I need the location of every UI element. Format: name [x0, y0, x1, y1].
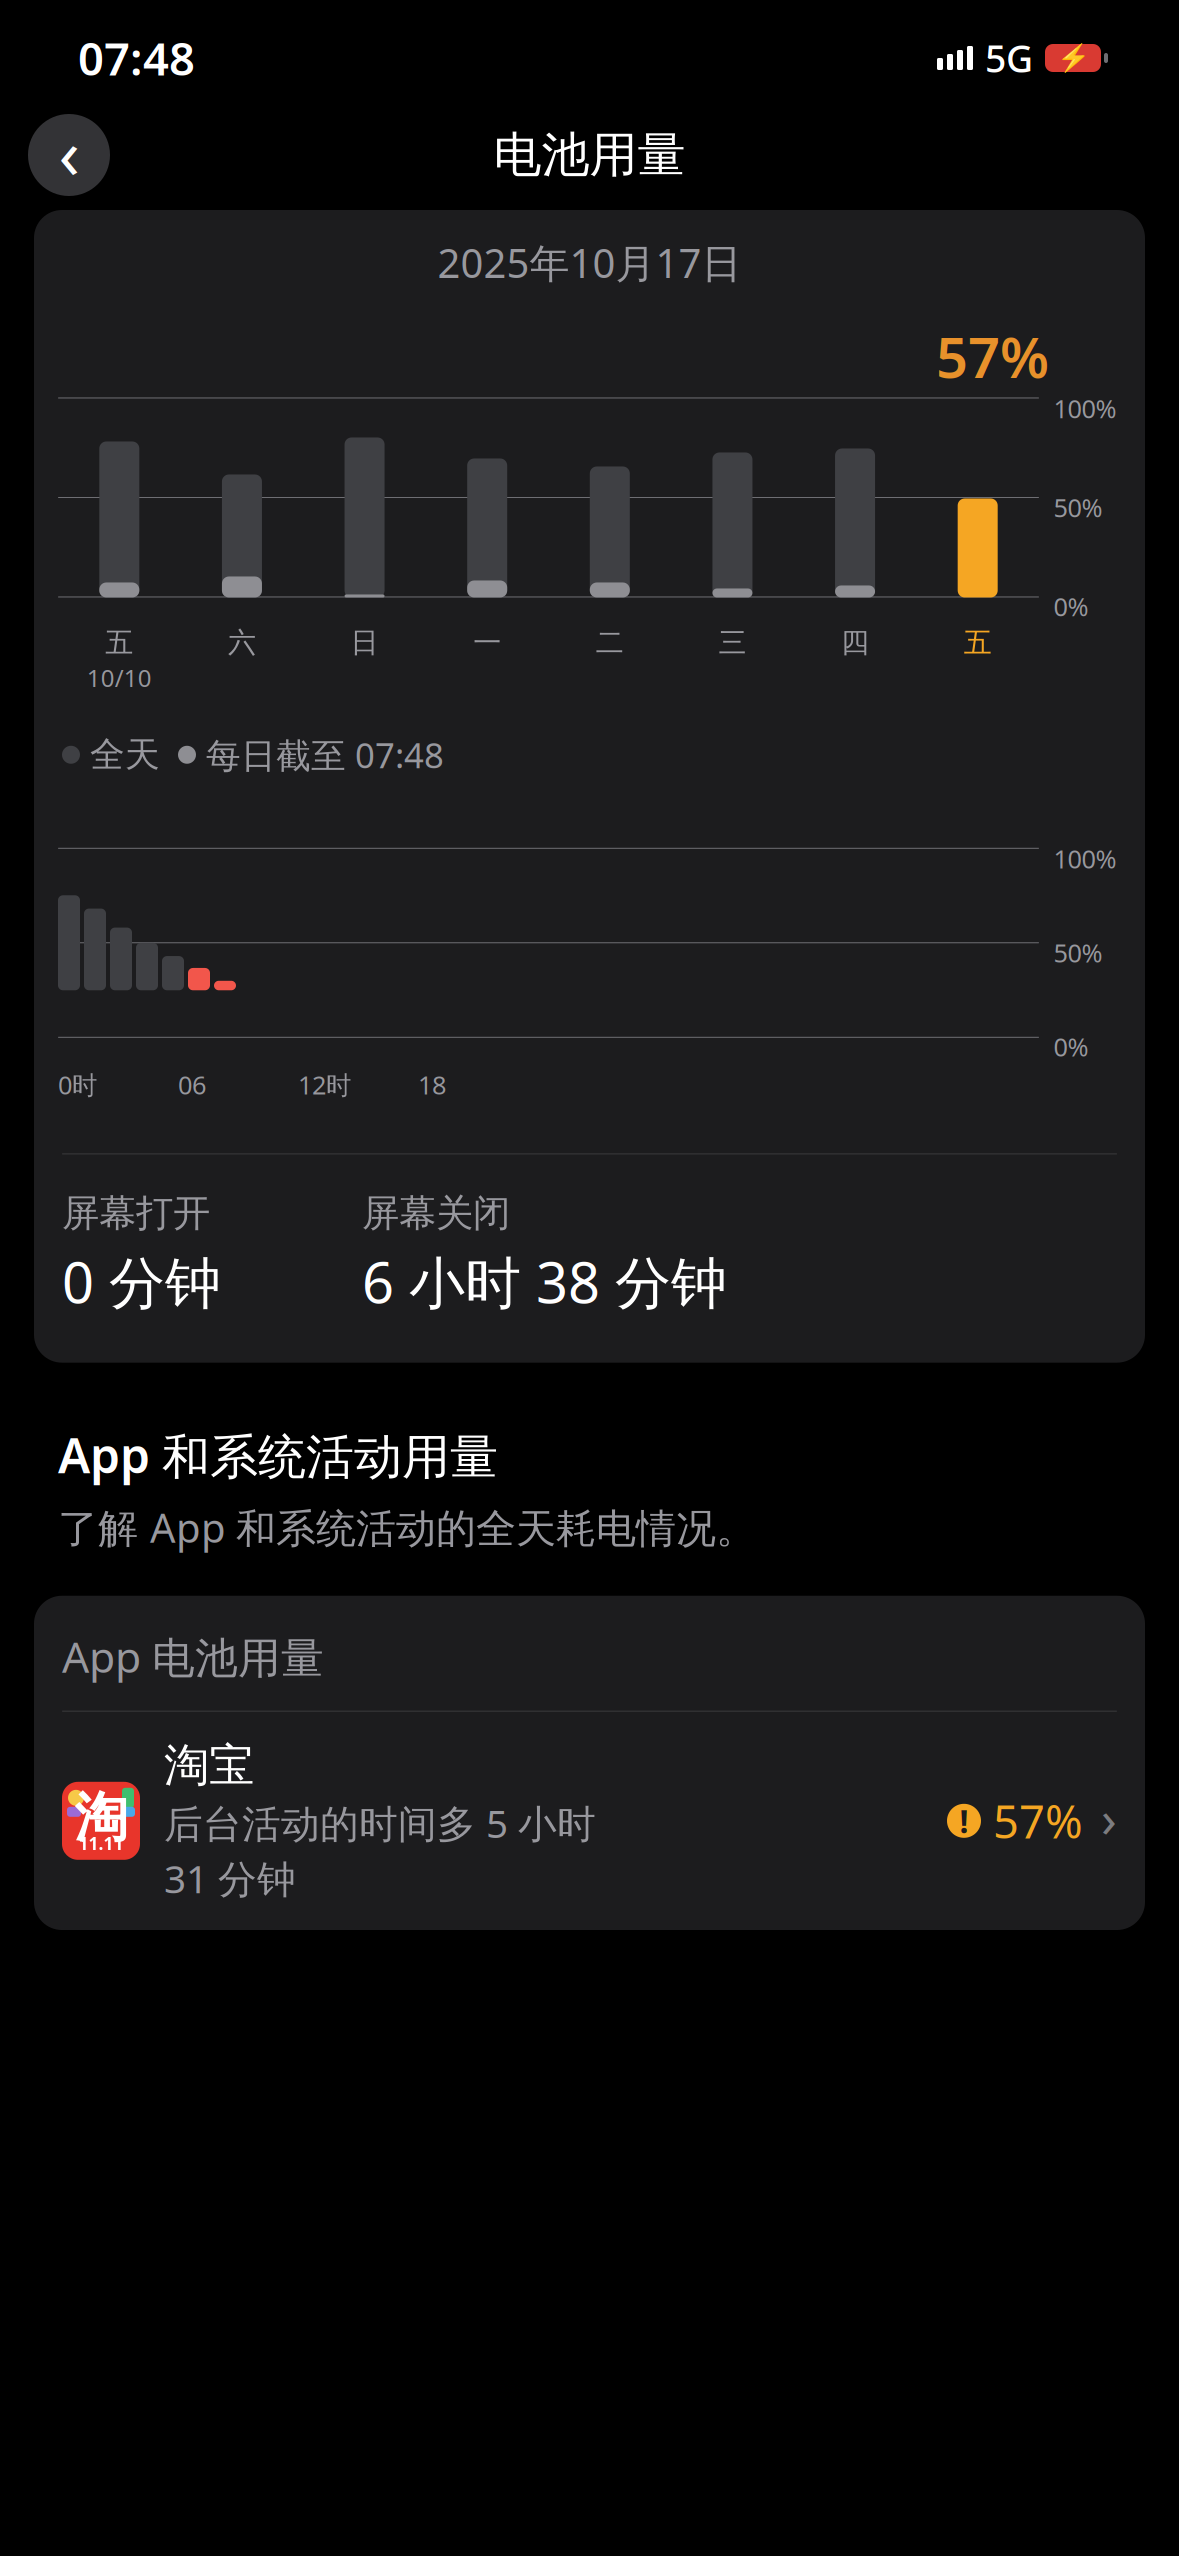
staticText: ‹	[58, 106, 79, 198]
staticText: ⚡	[1056, 43, 1089, 73]
staticText: 五	[105, 625, 133, 660]
staticText: 07:48	[78, 28, 195, 88]
staticText: 11.11	[78, 1832, 123, 1855]
staticText: 屏幕关闭	[362, 1190, 510, 1236]
staticText: 100%	[1053, 842, 1116, 876]
staticText: 一	[473, 625, 501, 660]
staticText: ›	[1101, 1784, 1117, 1851]
staticText: 电池用量	[493, 125, 685, 184]
staticText: 5G	[985, 33, 1033, 83]
staticText: 了解 App 和系统活动的全天耗电情况。	[58, 1501, 756, 1554]
staticText: 100%	[1053, 392, 1116, 425]
staticText: 0%	[1053, 590, 1088, 623]
staticText: 57%	[993, 1791, 1083, 1851]
staticText: 五	[964, 625, 992, 660]
staticText: 四	[841, 625, 869, 660]
staticText: 淘宝	[164, 1738, 254, 1793]
staticText: 6 小时 38 分钟	[362, 1244, 727, 1319]
staticText: 18	[418, 1068, 446, 1101]
staticText: 0时	[58, 1068, 97, 1101]
staticText: 六	[228, 625, 256, 660]
staticText: 每日截至 07:48	[206, 732, 444, 778]
staticText: 全天	[90, 733, 160, 776]
staticText: 57%	[936, 319, 1049, 393]
staticText: 二	[596, 625, 624, 660]
staticText: 06	[178, 1068, 206, 1101]
staticText: 2025年10月17日	[437, 236, 741, 289]
staticText: 50%	[1053, 936, 1102, 970]
staticText: 日	[351, 625, 379, 660]
staticText: 后台活动的时间多 5 小时	[164, 1797, 596, 1849]
staticText: 10/10	[87, 662, 152, 694]
staticText: 三	[718, 625, 746, 660]
button[interactable]: 淘	[34, 1712, 1145, 1930]
staticText: 0 分钟	[62, 1244, 221, 1319]
staticText: 淘	[74, 1785, 127, 1851]
staticText: 12时	[298, 1068, 351, 1101]
staticText: 31 分钟	[164, 1853, 296, 1904]
staticText: 50%	[1053, 491, 1102, 524]
button[interactable]: 返回	[28, 106, 110, 204]
staticText: 屏幕打开	[62, 1190, 210, 1236]
staticText: App 和系统活动用量	[58, 1423, 498, 1487]
staticText: App 电池用量	[62, 1628, 324, 1685]
staticText: !	[959, 1800, 968, 1842]
staticText: 0%	[1053, 1030, 1088, 1064]
